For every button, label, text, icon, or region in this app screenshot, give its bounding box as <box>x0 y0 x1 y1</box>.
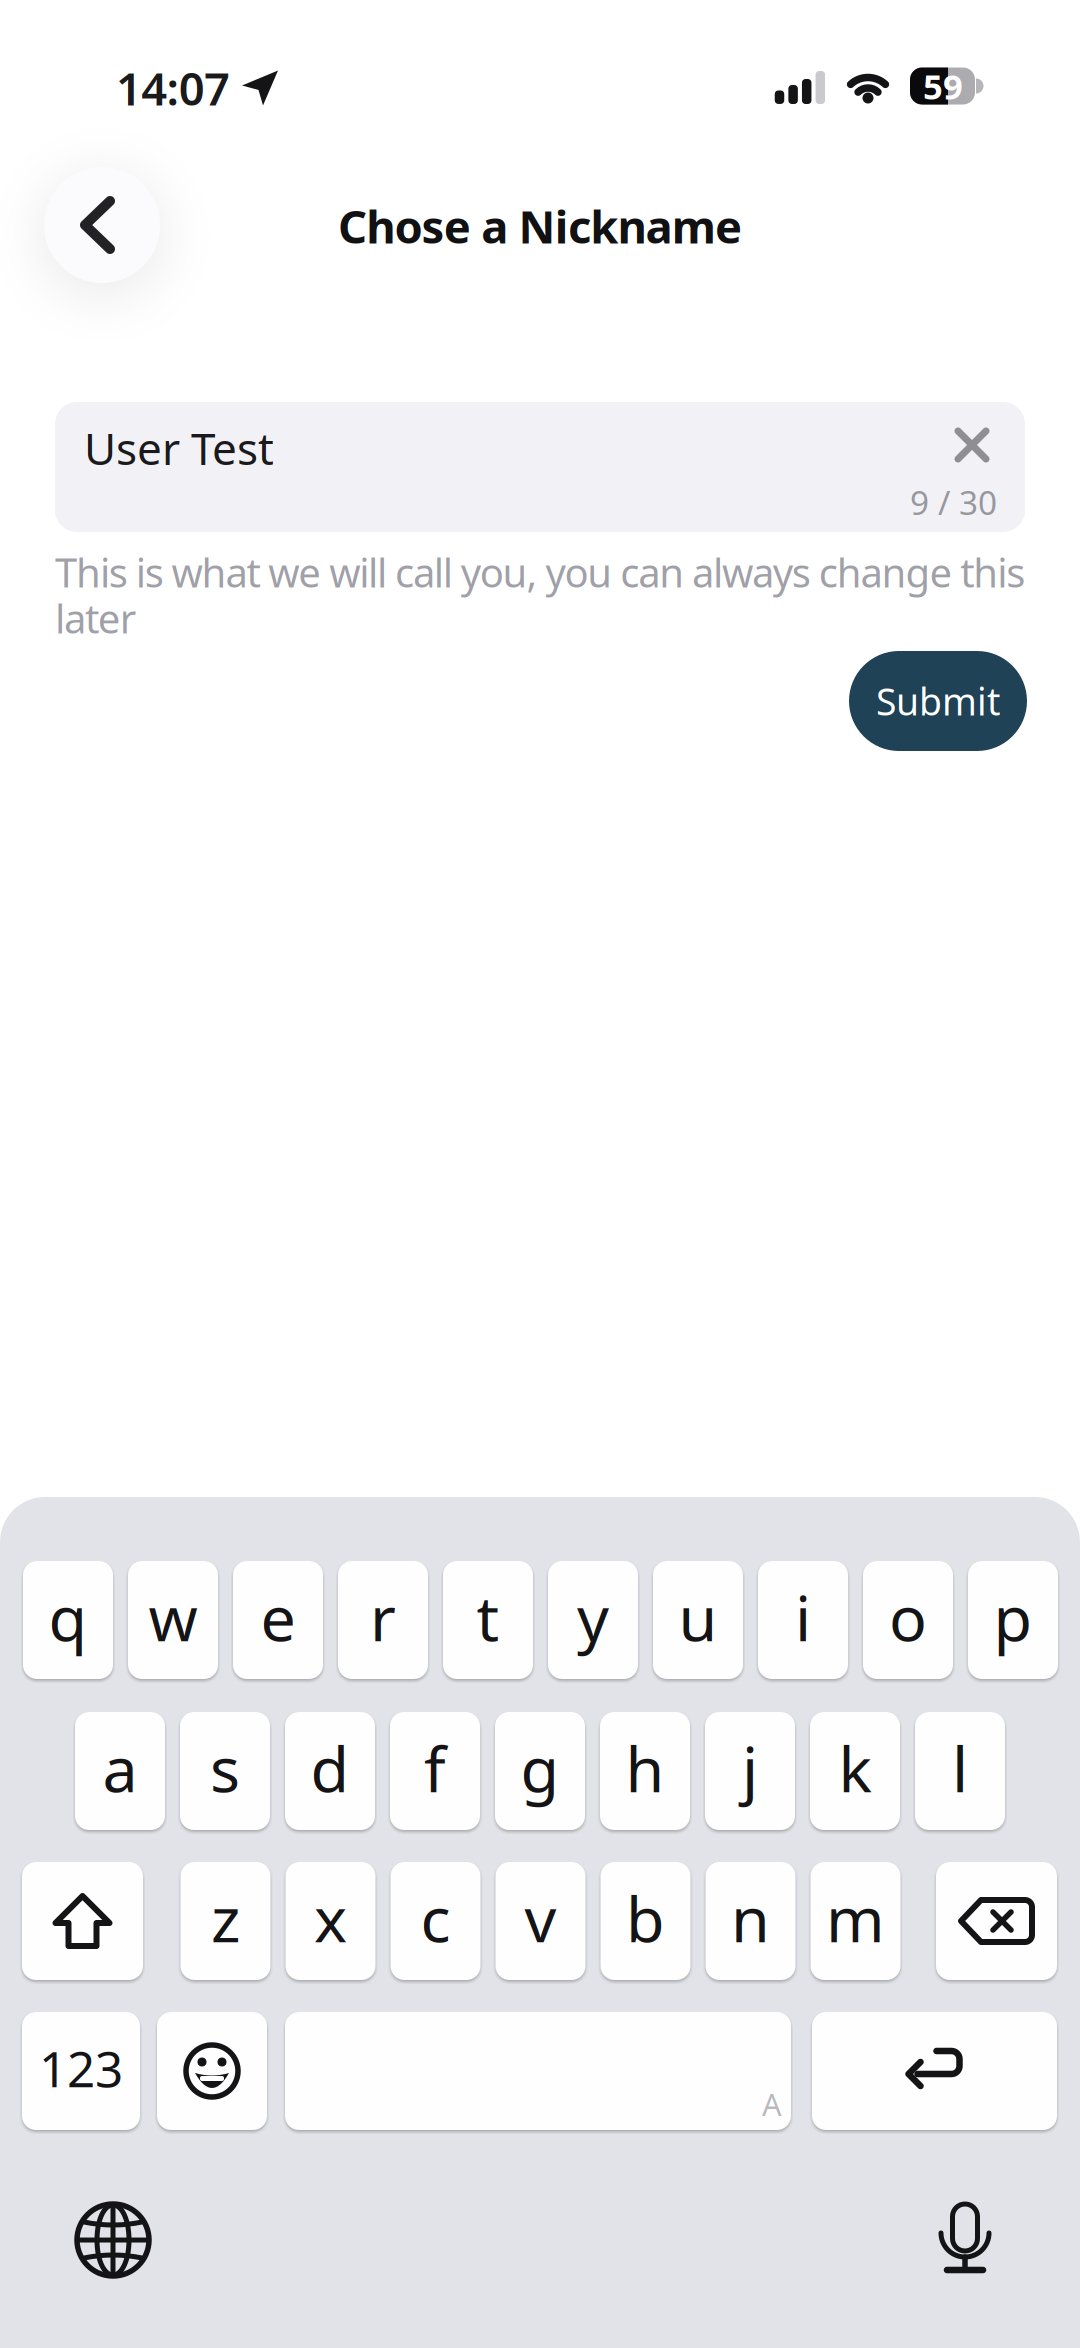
staticText: o <box>889 1575 927 1659</box>
staticText: z <box>211 1876 240 1960</box>
staticText: i <box>795 1575 811 1659</box>
button[interactable]: i <box>758 1561 848 1679</box>
button[interactable]: s <box>180 1712 270 1830</box>
button[interactable]: p <box>968 1561 1058 1679</box>
staticText: a <box>102 1726 137 1810</box>
staticText: n <box>731 1876 770 1960</box>
button[interactable]: Emoji <box>157 2012 267 2130</box>
button[interactable]: Dictation <box>920 2195 1010 2285</box>
staticText: User Test <box>84 419 274 477</box>
button[interactable]: Shift <box>22 1862 143 1980</box>
button[interactable]: h <box>600 1712 690 1830</box>
staticText: 123 <box>39 2035 123 2101</box>
button[interactable]: z <box>180 1862 270 1980</box>
staticText: Chose a Nickname <box>338 196 742 256</box>
button[interactable]: m <box>810 1862 900 1980</box>
staticText: m <box>826 1876 885 1960</box>
staticText: t <box>476 1575 499 1659</box>
staticText: l <box>952 1726 968 1810</box>
staticText: y <box>577 1575 609 1659</box>
staticText: This is what we will call you, you can a… <box>55 545 1025 598</box>
staticText: Submit <box>876 676 1000 726</box>
button[interactable]: r <box>338 1561 428 1679</box>
button[interactable]: j <box>705 1712 795 1830</box>
staticText: h <box>625 1726 664 1810</box>
button[interactable]: b <box>600 1862 690 1980</box>
button[interactable]: Back <box>44 167 160 283</box>
button[interactable]: 123 <box>22 2012 140 2130</box>
button[interactable]: w <box>128 1561 218 1679</box>
button[interactable]: Submit <box>849 651 1027 751</box>
staticText: 14:07 <box>116 58 230 118</box>
button[interactable]: y <box>548 1561 638 1679</box>
staticText: e <box>260 1575 295 1659</box>
button[interactable]: d <box>285 1712 375 1830</box>
button[interactable]: n <box>705 1862 795 1980</box>
staticText: r <box>370 1575 396 1659</box>
staticText: u <box>678 1575 717 1659</box>
staticText: A <box>762 2084 782 2124</box>
button[interactable]: f <box>390 1712 480 1830</box>
button[interactable]: g <box>495 1712 585 1830</box>
staticText: s <box>210 1726 240 1810</box>
button[interactable]: c <box>390 1862 480 1980</box>
staticText: k <box>838 1726 871 1810</box>
button[interactable]: Space <box>285 2012 791 2130</box>
button[interactable]: u <box>653 1561 743 1679</box>
staticText: x <box>314 1876 347 1960</box>
button[interactable]: Delete <box>936 1862 1057 1980</box>
staticText: j <box>742 1726 758 1810</box>
staticText: 59 <box>923 63 963 109</box>
staticText: c <box>420 1876 450 1960</box>
button[interactable]: Clear text <box>944 417 1000 473</box>
staticText: p <box>993 1575 1032 1659</box>
button[interactable]: Next keyboard <box>68 2195 158 2285</box>
staticText: g <box>520 1726 559 1810</box>
button[interactable]: l <box>915 1712 1005 1830</box>
button[interactable]: q <box>23 1561 113 1679</box>
staticText: w <box>148 1575 197 1659</box>
button[interactable]: a <box>75 1712 165 1830</box>
button[interactable]: v <box>495 1862 585 1980</box>
button[interactable]: e <box>233 1561 323 1679</box>
button[interactable]: Return <box>812 2012 1057 2130</box>
button[interactable]: o <box>863 1561 953 1679</box>
staticText: b <box>626 1876 665 1960</box>
staticText: later <box>55 591 137 644</box>
staticText: q <box>48 1575 87 1659</box>
staticText: d <box>310 1726 349 1810</box>
button[interactable]: k <box>810 1712 900 1830</box>
staticText: 9 / 30 <box>910 480 997 524</box>
staticText: f <box>424 1726 446 1810</box>
button[interactable]: t <box>443 1561 533 1679</box>
button[interactable]: x <box>285 1862 375 1980</box>
staticText: v <box>524 1876 556 1960</box>
